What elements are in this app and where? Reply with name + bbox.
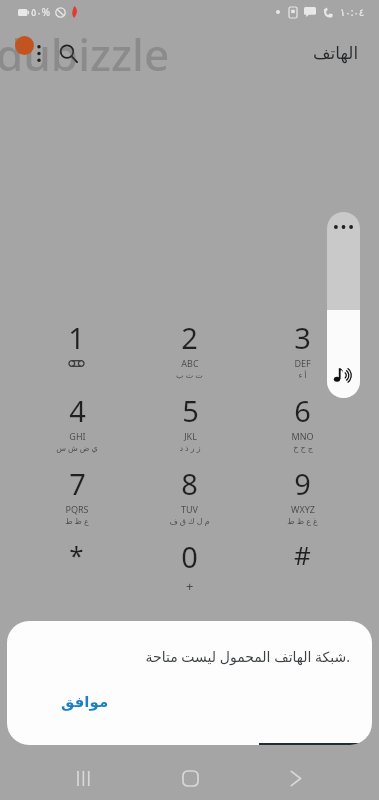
button[interactable]: 3 bbox=[246, 312, 359, 385]
button[interactable]: Volume bbox=[327, 212, 360, 398]
staticText: ز ر ذ د bbox=[179, 442, 201, 453]
staticText: ع ظ ط bbox=[65, 515, 89, 526]
staticText: 1 bbox=[68, 318, 85, 357]
staticText: 3 bbox=[294, 318, 311, 357]
staticText: + bbox=[186, 577, 194, 595]
staticText: DEF bbox=[294, 357, 311, 369]
button[interactable]: More options bbox=[22, 36, 56, 70]
button[interactable]: 9 bbox=[246, 458, 359, 531]
button[interactable]: 2 bbox=[133, 312, 246, 385]
button[interactable]: # bbox=[246, 531, 359, 604]
button[interactable]: Search bbox=[48, 33, 88, 73]
staticText: 6 bbox=[294, 391, 311, 430]
button[interactable]: 1 bbox=[20, 312, 133, 385]
staticText: م ل ك ق ف bbox=[169, 515, 210, 526]
button[interactable]: Back bbox=[273, 756, 317, 800]
button[interactable]: Home bbox=[168, 756, 212, 800]
staticText: ي ض ش س bbox=[56, 442, 98, 453]
staticText: غ ع ظ ط bbox=[287, 515, 318, 526]
staticText: 0 bbox=[181, 537, 198, 576]
staticText: ت ث ب bbox=[176, 369, 203, 380]
staticText: JKL bbox=[184, 430, 197, 442]
staticText: TUV bbox=[181, 503, 198, 515]
staticText: MNO bbox=[291, 430, 314, 442]
button[interactable]: 8 bbox=[133, 458, 246, 531]
button[interactable]: Recent apps bbox=[62, 756, 106, 800]
staticText: 4 bbox=[69, 391, 86, 430]
button[interactable]: 5 bbox=[133, 385, 246, 458]
staticText: 2 bbox=[181, 318, 198, 357]
button[interactable]: * bbox=[20, 531, 133, 604]
staticText: PQRS bbox=[65, 503, 89, 515]
button[interactable]: 7 bbox=[20, 458, 133, 531]
staticText: الهاتف bbox=[313, 43, 359, 63]
button[interactable]: 0 bbox=[133, 531, 246, 604]
staticText: ABC bbox=[181, 357, 199, 369]
staticText: WXYZ bbox=[291, 503, 315, 515]
button[interactable]: 4 bbox=[20, 385, 133, 458]
staticText: * bbox=[69, 537, 84, 572]
button[interactable]: 6 bbox=[246, 385, 359, 458]
staticText: شبكة الهاتف المحمول ليست متاحة. bbox=[145, 647, 350, 666]
staticText: # bbox=[294, 537, 311, 572]
staticText: 9 bbox=[294, 464, 311, 503]
staticText: موافق bbox=[61, 693, 109, 710]
staticText: 7 bbox=[69, 464, 86, 503]
staticText: ١٠:٠٤ bbox=[340, 5, 365, 19]
staticText: ج ح خ bbox=[293, 442, 313, 453]
button[interactable]: موافق bbox=[47, 687, 123, 716]
staticText: dubizzle bbox=[0, 24, 170, 84]
staticText: 8 bbox=[181, 464, 198, 503]
staticText: أ ء bbox=[298, 369, 307, 380]
staticText: 5 bbox=[182, 391, 199, 430]
staticText: GHI bbox=[69, 430, 86, 442]
staticText: ٥٠% bbox=[31, 5, 51, 19]
